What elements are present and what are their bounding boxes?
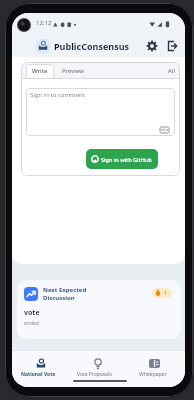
staticText: Sign in to comment bbox=[30, 91, 85, 99]
staticText: National Vote bbox=[21, 371, 56, 378]
staticText: Vote Proposals bbox=[77, 371, 112, 378]
staticText: 1 bbox=[164, 290, 167, 297]
staticText: 12:12 bbox=[36, 19, 52, 27]
button[interactable]: Next Expected bbox=[17, 280, 181, 339]
button[interactable] bbox=[145, 39, 159, 53]
staticText: All bbox=[168, 67, 175, 75]
button[interactable]: Vote Proposals bbox=[74, 353, 122, 381]
button[interactable]: Whitepaper bbox=[132, 353, 176, 381]
staticText: Sign in with GitHub bbox=[101, 156, 152, 163]
staticText: Preview bbox=[62, 67, 84, 75]
button[interactable] bbox=[165, 39, 179, 53]
button[interactable] bbox=[58, 64, 86, 79]
staticText: Write bbox=[32, 67, 48, 75]
button[interactable]: Sign in to comment bbox=[26, 88, 175, 136]
button[interactable]: Sign in with GitHub bbox=[86, 149, 158, 169]
button[interactable]: National Vote bbox=[18, 353, 64, 381]
staticText: Whitepaper bbox=[139, 371, 167, 378]
staticText: vote bbox=[24, 308, 40, 318]
staticText: Next Expected bbox=[43, 286, 87, 294]
staticText: ended bbox=[24, 320, 39, 327]
staticText: Discussion bbox=[43, 294, 75, 302]
staticText: PublicConsensus bbox=[54, 40, 130, 52]
button[interactable] bbox=[36, 39, 50, 53]
button[interactable] bbox=[26, 64, 54, 79]
